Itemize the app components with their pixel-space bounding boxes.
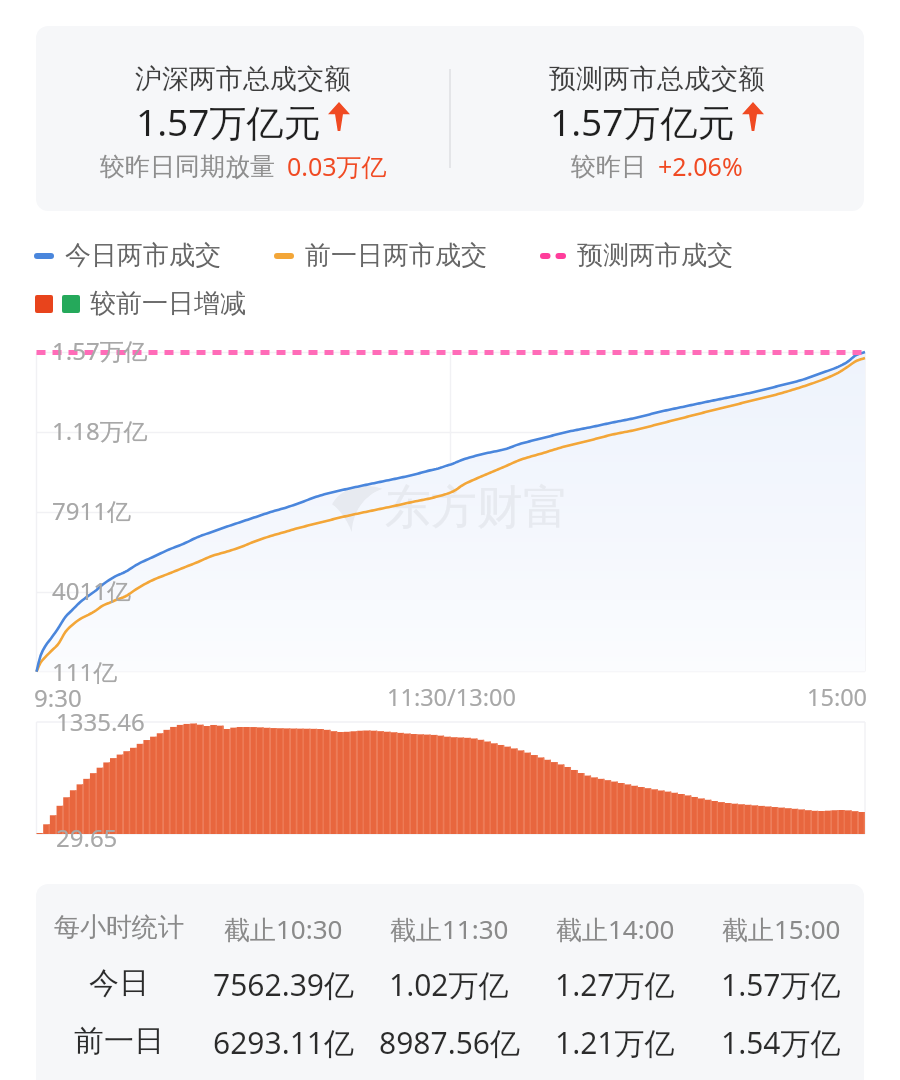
button[interactable]: 每小时统计 — [36, 884, 864, 1080]
staticText: 1.57万亿 — [721, 964, 841, 1005]
staticText: 7911亿 — [52, 494, 131, 527]
staticText: 1.57万亿元 — [550, 96, 735, 147]
staticText: 11:30/13:00 — [387, 681, 516, 713]
staticText: 东方财富 — [385, 479, 569, 537]
staticText: 前一日两市成交 — [305, 239, 487, 272]
staticText: 截止11:30 — [390, 911, 509, 947]
staticText: 今日两市成交 — [65, 239, 221, 272]
staticText: 较昨日 — [571, 151, 646, 182]
staticText: 较前一日增减 — [90, 287, 246, 320]
staticText: 预测两市总成交额 — [549, 62, 765, 96]
staticText: 7562.39亿 — [213, 964, 354, 1005]
staticText: 截止10:30 — [224, 911, 343, 947]
button[interactable]: 预测两市成交 — [540, 239, 733, 272]
button[interactable]: 较前一日增减 — [35, 287, 246, 320]
staticText: 1.02万亿 — [389, 964, 509, 1005]
staticText: 截止15:00 — [722, 911, 841, 947]
button[interactable]: 沪深两市总成交额 — [36, 26, 864, 211]
staticText: 1.57万亿 — [52, 334, 148, 367]
staticText: 1.27万亿 — [555, 964, 675, 1005]
staticText: 9:30 — [34, 681, 82, 714]
staticText: 预测两市成交 — [577, 239, 733, 272]
staticText: +2.06% — [658, 149, 743, 183]
staticText: 1335.46 — [56, 705, 145, 738]
staticText: 15:00 — [807, 681, 868, 713]
staticText: 8987.56亿 — [379, 1022, 520, 1063]
staticText: 截止14:00 — [556, 911, 675, 947]
staticText: 111亿 — [52, 655, 118, 688]
staticText: 6293.11亿 — [213, 1022, 354, 1063]
staticText: 每小时统计 — [54, 911, 184, 944]
staticText: 4011亿 — [52, 574, 131, 607]
staticText: 0.03万亿 — [287, 149, 387, 183]
staticText: 29.65 — [56, 821, 118, 854]
staticText: 前一日 — [74, 1022, 164, 1060]
staticText: 今日 — [89, 964, 149, 1002]
staticText: 较昨日同期放量 — [100, 151, 275, 182]
staticText: 1.57万亿元 — [136, 96, 321, 147]
staticText: 沪深两市总成交额 — [135, 62, 351, 96]
staticText: 1.21万亿 — [555, 1022, 675, 1063]
staticText: 1.54万亿 — [721, 1022, 841, 1063]
button[interactable]: 前一日两市成交 — [274, 239, 487, 272]
button[interactable]: 今日两市成交 — [34, 239, 221, 272]
staticText: 1.18万亿 — [52, 414, 148, 447]
